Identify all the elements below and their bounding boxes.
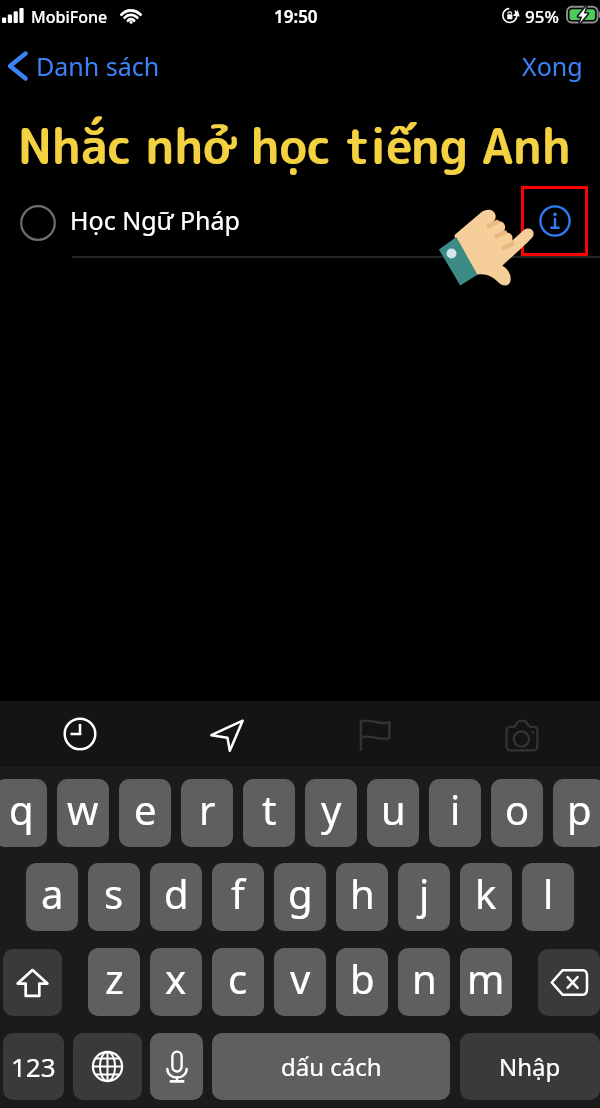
staticText: q — [9, 782, 34, 836]
button[interactable]: Next keyboard — [73, 1033, 142, 1100]
staticText: v — [290, 951, 311, 1005]
button[interactable]: Camera — [473, 703, 569, 765]
button[interactable]: p — [553, 779, 600, 847]
button[interactable]: s — [88, 863, 140, 931]
staticText: 19:50 — [274, 5, 318, 28]
staticText: e — [134, 782, 157, 836]
button[interactable]: Mark as complete — [8, 193, 68, 253]
staticText: i — [450, 782, 461, 836]
staticText: z — [105, 951, 124, 1005]
button[interactable]: m — [460, 948, 512, 1016]
button[interactable]: t — [243, 779, 295, 847]
staticText: x — [165, 951, 187, 1005]
staticText: Nhắc nhở học tiếng Anh — [18, 112, 571, 179]
button[interactable]: Location — [178, 703, 274, 765]
staticText: n — [412, 951, 437, 1005]
staticText: b — [350, 951, 375, 1005]
button[interactable]: Dictation — [150, 1033, 203, 1100]
staticText: w — [67, 782, 99, 836]
staticText: r — [199, 782, 216, 836]
staticText: a — [41, 866, 64, 920]
button[interactable]: q — [0, 779, 47, 847]
button[interactable]: c — [212, 948, 264, 1016]
button[interactable]: k — [460, 863, 512, 931]
staticText: j — [419, 866, 430, 920]
button[interactable]: i — [429, 779, 481, 847]
button[interactable]: e — [119, 779, 171, 847]
button[interactable]: Shift — [3, 949, 62, 1016]
staticText: c — [228, 951, 248, 1005]
staticText: h — [350, 866, 375, 920]
staticText: t — [262, 782, 277, 836]
button[interactable]: dấu cách — [212, 1033, 450, 1100]
button[interactable]: x — [150, 948, 202, 1016]
button[interactable]: Time — [32, 703, 128, 765]
button[interactable]: g — [274, 863, 326, 931]
button[interactable]: Xong — [504, 44, 600, 88]
staticText: f — [231, 866, 245, 920]
button[interactable]: Danh sách — [2, 44, 160, 88]
staticText: 95% — [525, 5, 559, 28]
staticText: MobiFone — [31, 6, 108, 28]
button[interactable]: u — [367, 779, 419, 847]
button[interactable]: j — [398, 863, 450, 931]
staticText: o — [505, 782, 530, 836]
button[interactable]: d — [150, 863, 202, 931]
staticText: g — [288, 866, 313, 920]
button[interactable]: v — [274, 948, 326, 1016]
button[interactable]: o — [491, 779, 543, 847]
staticText: l — [543, 866, 554, 920]
staticText: d — [164, 866, 189, 920]
staticText: Danh sách — [36, 49, 160, 83]
staticText: m — [467, 951, 505, 1005]
staticText: Học Ngữ Pháp — [70, 203, 240, 237]
staticText: 123 — [11, 1049, 56, 1084]
button[interactable]: r — [181, 779, 233, 847]
button[interactable]: h — [336, 863, 388, 931]
button[interactable]: Details — [521, 186, 588, 256]
staticText: y — [321, 782, 342, 836]
staticText: s — [104, 866, 124, 920]
button[interactable]: w — [57, 779, 109, 847]
button[interactable]: Backspace — [538, 949, 600, 1016]
staticText: u — [381, 782, 406, 836]
button[interactable]: a — [26, 863, 78, 931]
staticText: Nhập — [499, 1050, 561, 1083]
staticText: k — [475, 866, 497, 920]
button[interactable]: n — [398, 948, 450, 1016]
staticText: p — [567, 782, 592, 836]
button[interactable]: 123 — [3, 1033, 64, 1100]
button[interactable]: Nhập — [460, 1033, 600, 1100]
staticText: Xong — [522, 49, 583, 83]
button[interactable]: z — [88, 948, 140, 1016]
button[interactable]: f — [212, 863, 264, 931]
button[interactable]: Flag — [326, 703, 422, 765]
button[interactable]: y — [305, 779, 357, 847]
staticText: dấu cách — [281, 1050, 382, 1083]
button[interactable]: b — [336, 948, 388, 1016]
button[interactable]: l — [522, 863, 574, 931]
